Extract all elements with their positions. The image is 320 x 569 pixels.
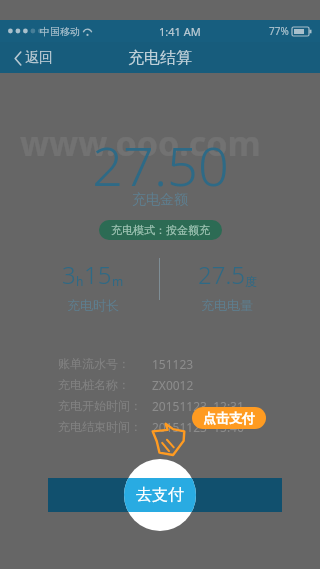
staticText: 充电结束时间：	[58, 419, 142, 434]
staticText: 3	[62, 258, 76, 291]
staticText: 返回	[25, 49, 53, 67]
staticText: 充电电量	[201, 297, 253, 313]
other: Tap here	[152, 420, 186, 458]
staticText: 点击支付	[203, 410, 255, 426]
staticText: 中国移动	[40, 25, 80, 38]
staticText: 27.5	[198, 258, 245, 291]
button[interactable]	[48, 478, 282, 512]
staticText: 充电时长	[67, 297, 119, 313]
staticText: 去支付	[136, 485, 184, 505]
staticText: 77%	[269, 24, 289, 38]
staticText: h	[76, 273, 84, 289]
staticText: 充电金额	[132, 191, 188, 209]
button[interactable]: 充电模式：按金额充	[99, 220, 222, 240]
staticText: 15	[84, 258, 112, 291]
staticText: 充电开始时间：	[58, 398, 142, 413]
staticText: 账单流水号：	[58, 356, 130, 371]
staticText: 27.50	[92, 128, 229, 202]
staticText: 度	[245, 274, 257, 289]
staticText: 充电桩名称：	[58, 377, 130, 392]
button[interactable]: 去支付	[124, 459, 196, 531]
staticText: 充电结算	[128, 48, 192, 68]
staticText: 充电模式：按金额充	[111, 223, 210, 237]
staticText: www.ooo.com	[20, 120, 261, 166]
staticText: m	[112, 273, 124, 289]
staticText: 151123	[152, 356, 194, 372]
staticText: 20151123 12:31	[152, 398, 244, 414]
button[interactable]: 点击支付	[192, 407, 266, 429]
staticText: 20151123 15:46	[152, 419, 244, 435]
button[interactable]: 返回	[10, 45, 57, 71]
staticText: ZX0012	[152, 377, 194, 393]
staticText: 1:41 AM	[159, 24, 201, 39]
